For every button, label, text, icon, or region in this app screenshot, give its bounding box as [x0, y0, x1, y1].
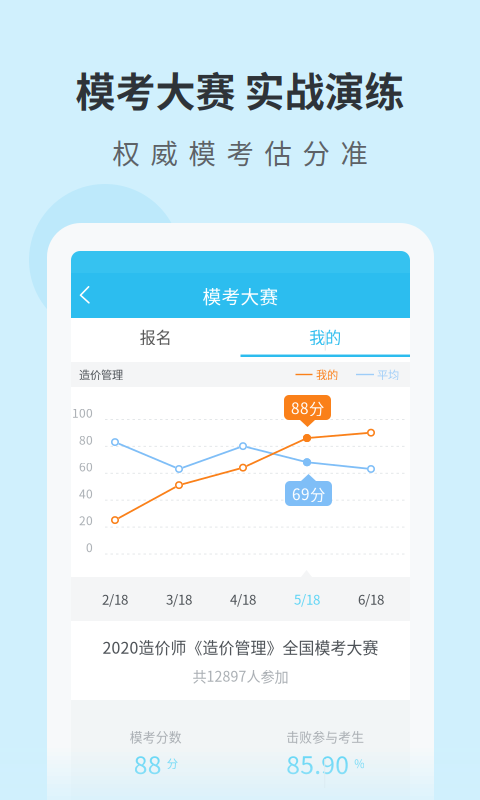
staticText: 69分: [292, 482, 325, 505]
button[interactable]: 报名: [71, 318, 240, 355]
staticText: 我的: [316, 366, 338, 383]
staticText: 85.90: [286, 745, 349, 781]
staticText: 6/18: [358, 589, 384, 609]
staticText: 80: [79, 431, 93, 448]
staticText: 2020造价师《造价管理》全国模考大赛: [102, 635, 378, 658]
button[interactable]: 我的: [240, 318, 410, 355]
staticText: 4/18: [230, 589, 256, 609]
staticText: 模考大赛: [202, 282, 278, 309]
staticText: 击败参与考生: [286, 727, 364, 745]
staticText: 3/18: [166, 589, 192, 609]
staticText: 60: [79, 458, 93, 475]
staticText: 模考分数: [130, 727, 182, 745]
staticText: %: [354, 755, 364, 772]
staticText: 2/18: [102, 589, 128, 609]
staticText: 5/18: [294, 589, 320, 609]
staticText: 共12897人参加: [192, 665, 288, 686]
staticText: 我的: [309, 325, 341, 348]
staticText: 造价管理: [79, 366, 123, 383]
staticText: 分: [167, 755, 178, 772]
staticText: 模考大赛 实战演练: [75, 60, 404, 118]
staticText: 40: [79, 484, 93, 502]
button[interactable]: Back: [71, 280, 101, 310]
staticText: 权威模考估分准: [112, 132, 367, 172]
staticText: 88: [134, 745, 162, 781]
staticText: 报名: [140, 325, 172, 348]
staticText: 88分: [291, 396, 324, 419]
staticText: 平均: [377, 366, 399, 383]
staticText: 100: [72, 404, 93, 421]
staticText: 0: [86, 538, 93, 556]
staticText: 20: [79, 511, 93, 529]
